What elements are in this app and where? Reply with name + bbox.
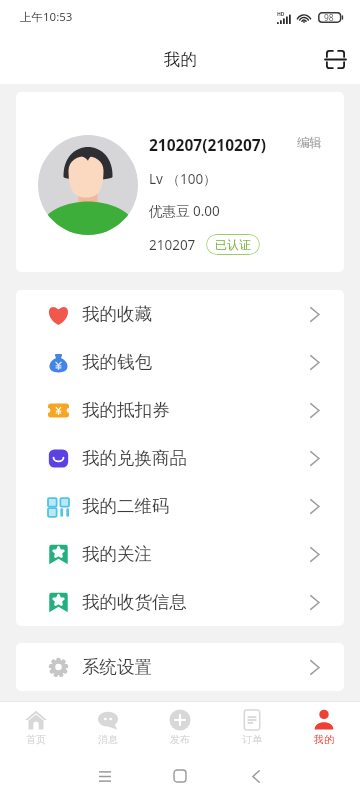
button[interactable]: 我的兑换商品 [16,434,344,482]
staticText: 我的二维码 [82,495,307,517]
staticText: HD [277,11,285,18]
staticText: 上午10:53 [20,9,73,25]
button[interactable]: 首页 [0,702,72,752]
staticText: 我的抵扣券 [82,399,307,421]
button[interactable]: Home [158,754,202,798]
staticText: 已认证 [215,237,251,252]
button[interactable]: 我的收货信息 [16,578,344,626]
button[interactable]: 我的二维码 [16,482,344,530]
staticText: 消息 [98,733,118,746]
staticText: 98 [324,12,334,23]
staticText: 我的关注 [82,543,307,565]
button[interactable]: 我的钱包 [16,338,344,386]
staticText: 210207 [149,236,196,254]
button[interactable]: 消息 [72,702,144,752]
staticText: 首页 [26,733,46,746]
button[interactable]: Recents [83,754,127,798]
button[interactable]: 编辑 [297,135,322,151]
button[interactable]: 我的收藏 [16,290,344,338]
staticText: 我的收货信息 [82,591,307,613]
staticText: 我的收藏 [82,303,307,325]
staticText: 发布 [170,733,190,746]
staticText: Lv （100） [149,170,217,188]
staticText: 系统设置 [82,656,307,678]
staticText: 我的 [314,733,334,746]
button[interactable]: 我的 [288,702,360,752]
staticText: 210207(210207) [149,134,266,155]
button[interactable]: 发布 [144,702,216,752]
staticText: 我的 [164,49,197,70]
button[interactable]: Scan QR code [320,44,350,74]
button[interactable]: 我的抵扣券 [16,386,344,434]
button[interactable]: 210207(210207) [16,92,344,272]
staticText: 优惠豆 0.00 [149,202,220,220]
staticText: 我的钱包 [82,351,307,373]
staticText: 订单 [242,733,262,746]
button[interactable]: 我的关注 [16,530,344,578]
button[interactable]: Back [234,754,278,798]
button[interactable]: 系统设置 [16,643,344,691]
button[interactable]: 订单 [216,702,288,752]
staticText: 我的兑换商品 [82,447,307,469]
